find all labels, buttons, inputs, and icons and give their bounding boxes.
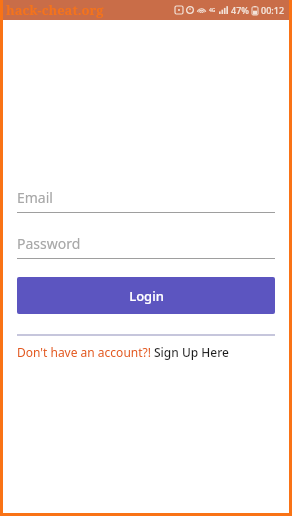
button[interactable]: Don't have an account?!: [17, 344, 229, 360]
staticText: Email: [17, 188, 53, 207]
staticText: Don't have an account?!: [17, 344, 151, 360]
staticText: Password: [17, 234, 81, 253]
staticText: 4G: [209, 7, 216, 14]
button[interactable]: Email: [17, 188, 275, 213]
staticText: hack-cheat.org: [6, 1, 104, 19]
staticText: Login: [129, 287, 164, 305]
staticText: Sign Up Here: [154, 344, 229, 360]
staticText: 00:12: [261, 4, 285, 16]
staticText: 47%: [231, 4, 249, 16]
button[interactable]: Login: [17, 277, 275, 314]
button[interactable]: Password: [17, 234, 275, 259]
